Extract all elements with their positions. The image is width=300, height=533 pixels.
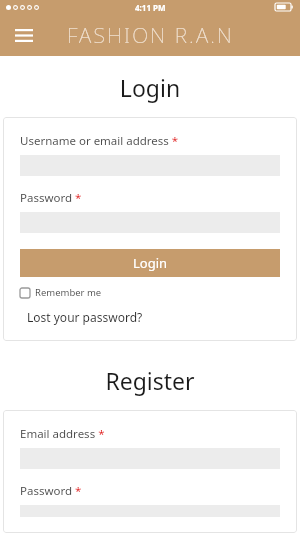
staticText: Username or email address * <box>20 133 179 149</box>
button[interactable]: Open navigation menu <box>10 21 38 49</box>
staticText: Lost your password? <box>27 309 143 325</box>
staticText: Password * <box>20 190 82 206</box>
staticText: FASHION R.A.N <box>67 21 234 50</box>
button[interactable]: Remember me <box>20 286 102 299</box>
staticText: Remember me <box>35 286 102 299</box>
staticText: Email address * <box>20 426 105 442</box>
staticText: Login <box>0 72 300 103</box>
staticText: 4:11 PM <box>135 2 166 13</box>
staticText: Login <box>133 254 168 272</box>
staticText: Register <box>0 365 300 396</box>
button[interactable]: Lost your password? <box>27 309 143 325</box>
staticText: Password * <box>20 483 82 499</box>
button[interactable]: Login <box>20 249 280 277</box>
